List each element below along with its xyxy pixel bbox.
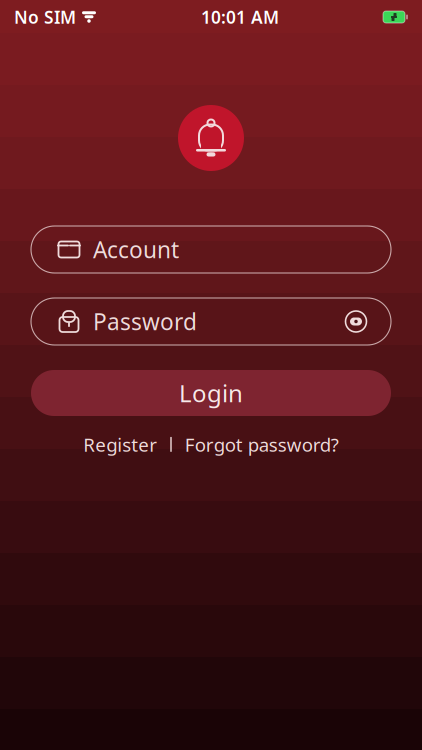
button[interactable]: Account bbox=[31, 226, 391, 273]
staticText: Password bbox=[93, 306, 197, 336]
button[interactable]: Register bbox=[79, 428, 161, 461]
staticText: Login bbox=[179, 377, 243, 409]
staticText: Forgot password? bbox=[185, 432, 339, 457]
staticText: 10:01 AM bbox=[201, 5, 279, 28]
staticText: Register bbox=[83, 432, 157, 457]
button[interactable]: Forgot password? bbox=[181, 428, 343, 461]
button[interactable]: Password bbox=[31, 298, 391, 345]
staticText: Account bbox=[93, 234, 179, 264]
button[interactable]: Login bbox=[31, 370, 391, 416]
staticText: No SIM bbox=[14, 5, 76, 28]
